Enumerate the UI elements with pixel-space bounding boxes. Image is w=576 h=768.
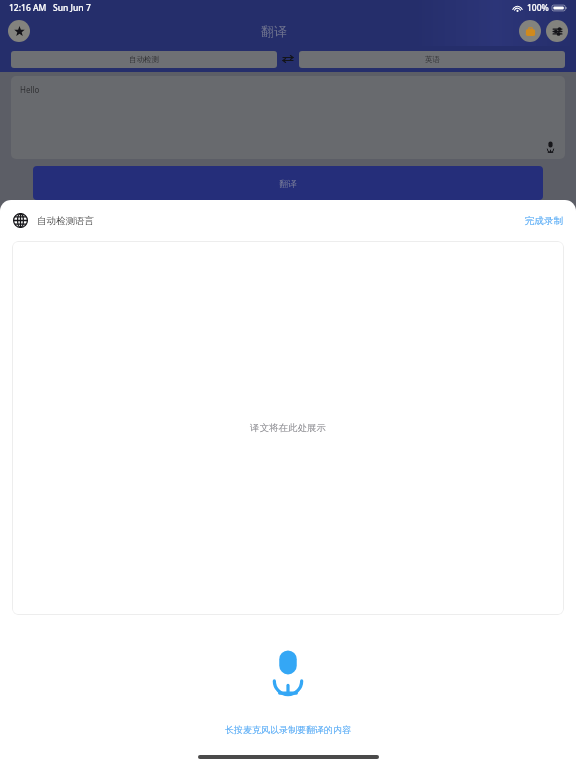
staticText: 12:16 AM <box>9 2 47 14</box>
staticText: 完成录制 <box>525 215 563 227</box>
button[interactable]: 完成录制 <box>525 215 563 227</box>
staticText: Hello <box>20 84 40 95</box>
staticText: 自动检测 <box>129 55 159 64</box>
staticText: 100% <box>527 2 549 14</box>
button[interactable]: Menu <box>546 20 568 42</box>
staticText: Sun Jun 7 <box>53 2 91 14</box>
button[interactable]: Hold to record <box>256 640 320 704</box>
button[interactable]: 长按麦克风以录制要翻译的内容 <box>225 724 351 735</box>
button[interactable]: 英语 <box>299 51 565 68</box>
staticText: 翻译 <box>261 23 287 39</box>
staticText: 译文将在此处展示 <box>250 422 326 434</box>
button[interactable]: Favorites <box>8 20 30 42</box>
button[interactable]: Voice input <box>543 140 557 154</box>
button[interactable]: 自动检测 <box>11 51 277 68</box>
staticText: 自动检测语言 <box>37 215 94 227</box>
staticText: 英语 <box>425 55 440 64</box>
button[interactable]: 自动检测语言 <box>13 213 94 228</box>
button[interactable]: 翻译 <box>33 166 543 200</box>
staticText: 翻译 <box>279 178 297 189</box>
button[interactable]: Workspace <box>519 20 541 42</box>
